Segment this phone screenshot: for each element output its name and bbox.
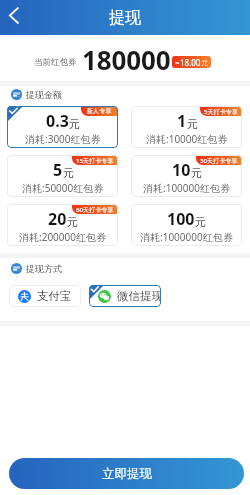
staticText: 立即提现 [102,466,152,482]
staticText: 15天打卡专享 [76,156,114,164]
staticText: 当前红包券 [34,57,77,68]
button[interactable]: 0.3 [7,106,118,148]
button[interactable]: Back [0,2,26,28]
staticText: 30天打卡专享 [200,156,238,164]
staticText: 提现方式 [26,263,62,274]
staticText: 消耗:10000红包券 [146,132,228,146]
button[interactable]: 支付宝 [9,285,81,307]
staticText: 消耗:1000000红包券 [140,230,233,244]
button[interactable]: 20 [7,204,118,246]
staticText: 20 [48,208,67,230]
staticText: 元 [63,166,74,180]
staticText: 元 [187,117,198,131]
staticText: 元 [191,166,202,180]
staticText: 1 [177,110,187,132]
staticText: 元 [67,215,78,229]
staticText: 100 [167,208,195,230]
button[interactable]: 10 [131,155,242,197]
staticText: 0.3 [46,110,69,132]
staticText: 消耗:50000红包券 [22,181,104,195]
staticText: 消耗:200000红包券 [19,230,106,244]
button[interactable]: 立即提现 [9,458,244,489]
staticText: 元 [69,117,80,131]
button[interactable]: 1 [131,106,242,148]
button[interactable]: 5 [7,155,118,197]
staticText: 10 [172,159,191,181]
staticText: 支付宝 [37,289,72,303]
staticText: 18.00 [180,57,201,68]
staticText: 提现 [109,8,141,28]
button[interactable]: 100 [131,204,242,246]
staticText: 新人专享 [87,107,112,115]
staticText: 消耗:3000红包券 [25,132,101,146]
staticText: 60天打卡专享 [76,205,114,213]
staticText: 提现金额 [26,89,62,100]
button[interactable]: 微信提现 [89,285,161,307]
staticText: 5天打卡专享 [204,107,238,115]
staticText: 180000 [82,42,171,77]
staticText: 元 [195,215,206,229]
staticText: 5 [53,159,63,181]
staticText: ≈ [175,60,180,66]
staticText: 元 [201,58,208,67]
staticText: 消耗:100000红包券 [143,181,230,195]
staticText: 微信提现 [117,289,161,303]
